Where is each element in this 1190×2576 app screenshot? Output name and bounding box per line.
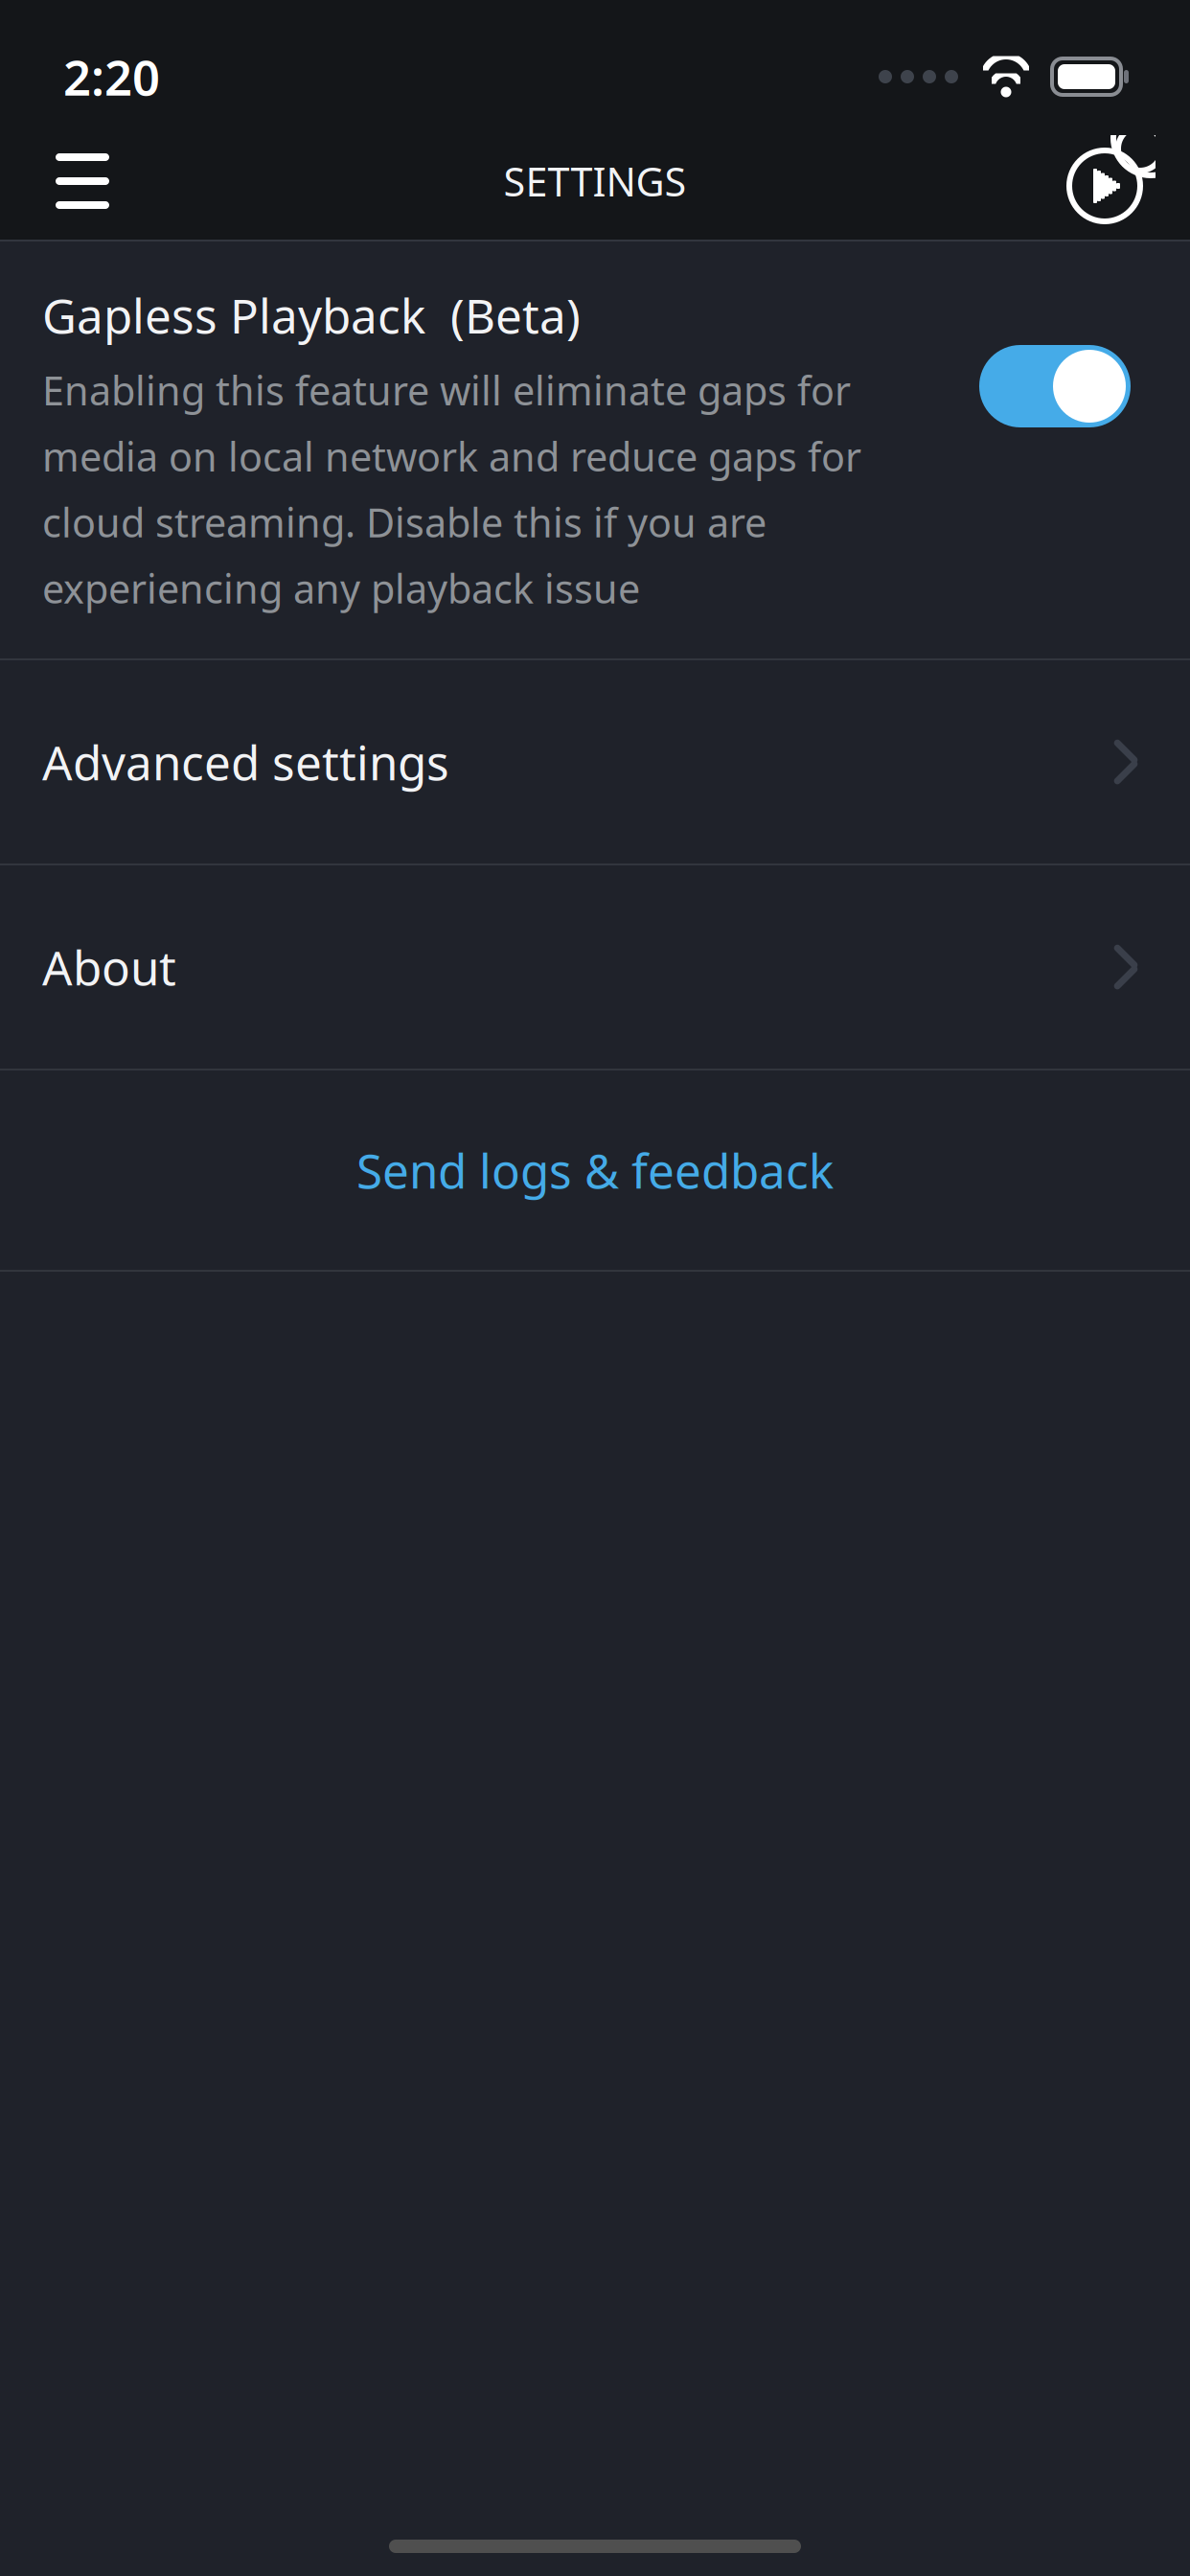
button[interactable]: Cast xyxy=(1064,135,1156,227)
button[interactable]: Advanced settings xyxy=(0,660,1190,864)
staticText: Enabling this feature will eliminate gap… xyxy=(42,364,861,614)
button[interactable]: About xyxy=(0,865,1190,1069)
staticText: Send logs & feedback xyxy=(356,1139,834,1202)
button[interactable]: Send logs & feedback xyxy=(0,1071,1190,1270)
button[interactable]: Gapless Playback (Beta) xyxy=(0,241,1190,658)
staticText: SETTINGS xyxy=(503,155,687,207)
staticText: About xyxy=(42,936,176,998)
button[interactable]: Menu xyxy=(36,135,128,227)
staticText: 2:20 xyxy=(63,44,160,109)
staticText: Gapless Playback (Beta) xyxy=(42,284,581,346)
staticText: Advanced settings xyxy=(42,731,449,793)
